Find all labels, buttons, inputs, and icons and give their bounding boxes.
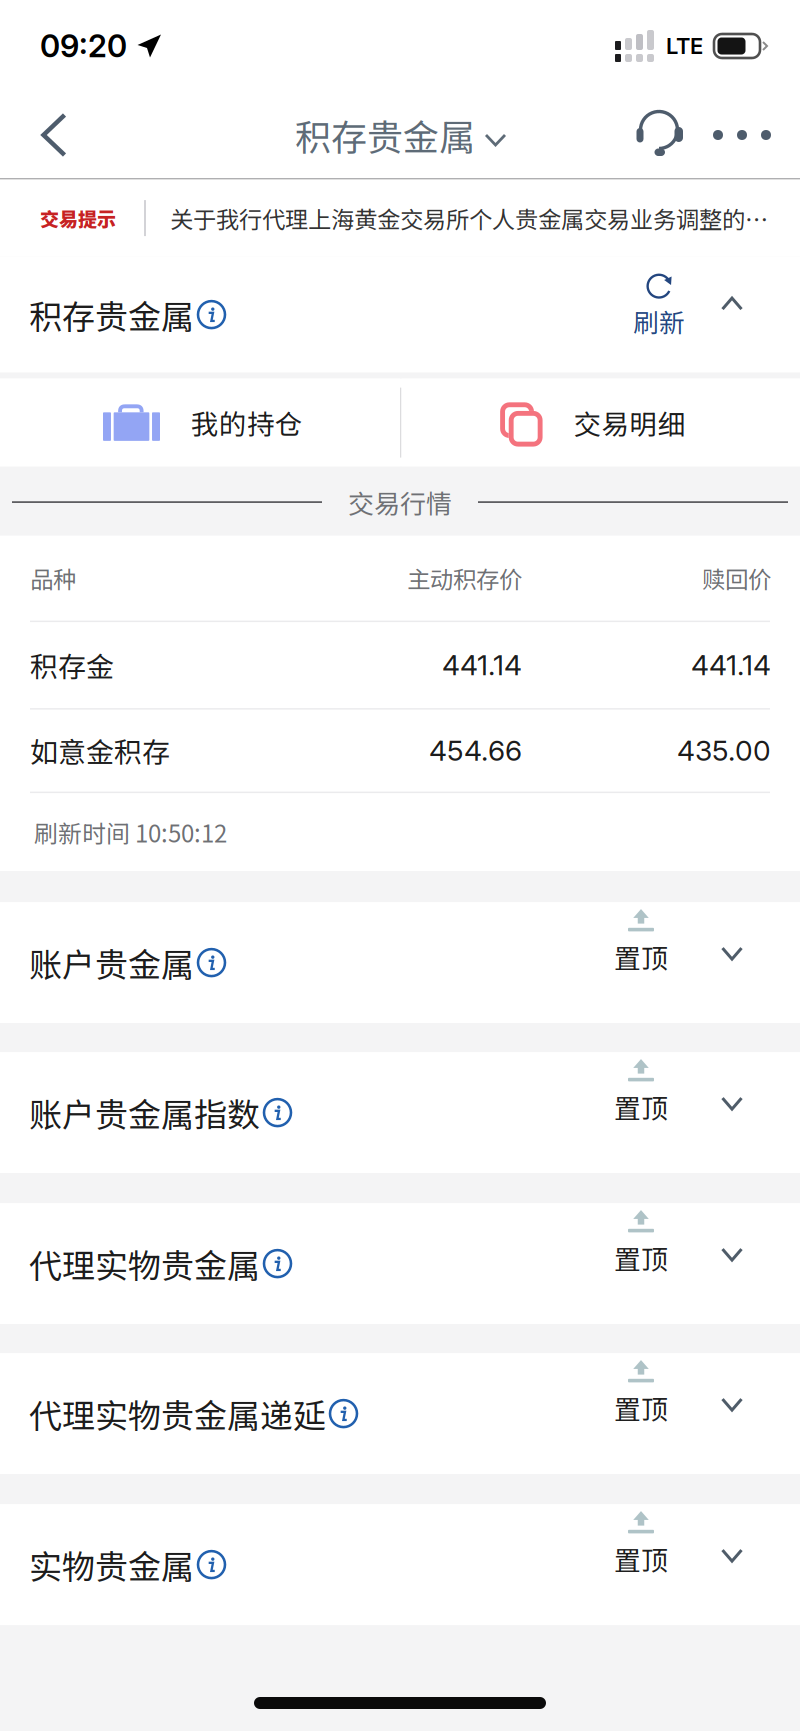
staticText: 积存贵金属: [29, 291, 194, 338]
button[interactable]: More options: [702, 92, 782, 178]
button[interactable]: 积存贵金属: [295, 92, 505, 178]
staticText: 代理实物贵金属递延: [29, 1390, 326, 1437]
staticText: 置顶: [614, 937, 668, 976]
staticText: 账户贵金属指数: [29, 1089, 260, 1136]
staticText: 置顶: [614, 1087, 668, 1126]
staticText: 如意金积存: [30, 730, 170, 771]
staticText: 交易明细: [573, 403, 685, 442]
button[interactable]: 交易提示: [0, 180, 800, 257]
staticText: 交易行情: [348, 483, 452, 521]
staticText: 我的持仓: [191, 403, 303, 442]
button[interactable]: Back: [16, 92, 92, 178]
staticText: 赎回价: [702, 561, 771, 595]
staticText: 账户贵金属: [29, 939, 194, 986]
button[interactable]: 刷新: [590, 257, 692, 373]
button[interactable]: 账户贵金属指数: [0, 1052, 800, 1173]
staticText: 刷新: [633, 303, 685, 339]
staticText: 关于我行代理上海黄金交易所个人贵金属交易业务调整的…: [170, 201, 768, 235]
staticText: 主动积存价: [407, 561, 522, 595]
staticText: 实物贵金属: [29, 1541, 194, 1588]
staticText: 441.14: [442, 648, 522, 682]
staticText: 交易提示: [40, 204, 116, 232]
button[interactable]: 代理实物贵金属: [0, 1203, 800, 1324]
button[interactable]: 实物贵金属: [0, 1504, 800, 1625]
staticText: 品种: [30, 561, 76, 595]
staticText: 置顶: [614, 1238, 668, 1277]
staticText: 441.14: [691, 648, 771, 682]
staticText: 积存金: [30, 645, 114, 685]
staticText: 09:20: [40, 27, 127, 65]
staticText: 刷新时间 10:50:12: [34, 815, 227, 849]
button[interactable]: Collapse section: [692, 257, 772, 373]
button[interactable]: 代理实物贵金属递延: [0, 1353, 800, 1474]
button[interactable]: 我的持仓: [0, 379, 400, 467]
button[interactable]: 交易明细: [401, 379, 800, 467]
staticText: 435.00: [677, 733, 771, 768]
staticText: LTE: [666, 33, 703, 59]
staticText: 置顶: [614, 1539, 668, 1578]
staticText: 置顶: [614, 1388, 668, 1427]
staticText: 积存贵金属: [295, 109, 475, 161]
button[interactable]: 账户贵金属: [0, 902, 800, 1023]
staticText: 代理实物贵金属: [29, 1240, 260, 1287]
button[interactable]: Customer service: [614, 92, 702, 178]
staticText: 454.66: [429, 733, 522, 768]
